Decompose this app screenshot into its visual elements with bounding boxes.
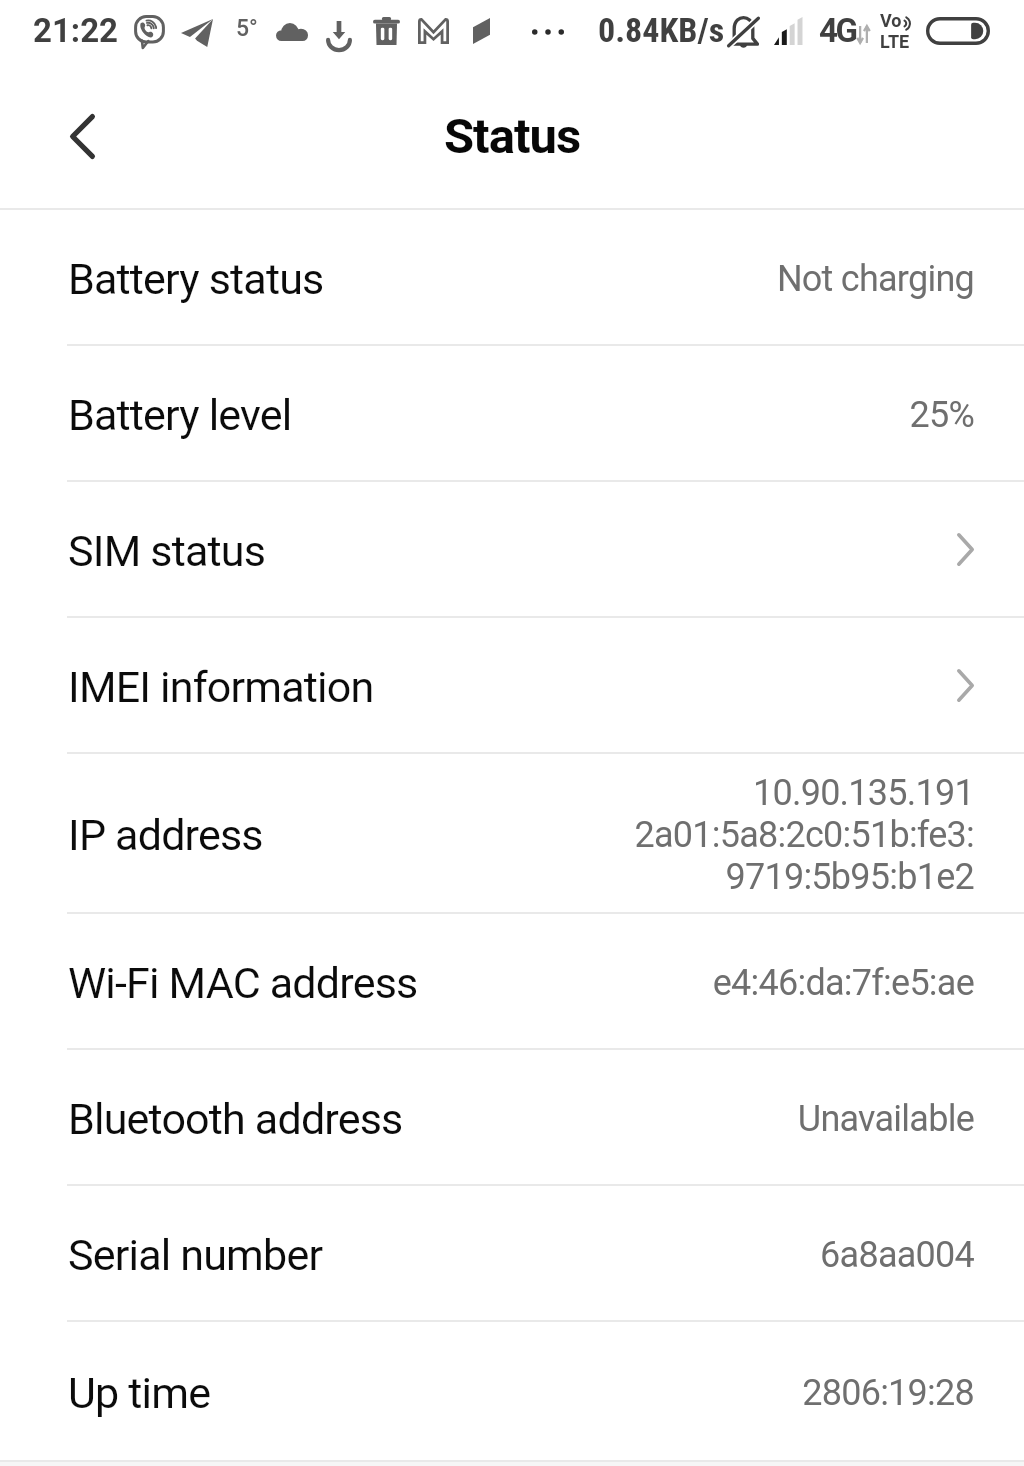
button[interactable]: Wi-Fi MAC address bbox=[0, 914, 1024, 1048]
staticText: IMEI information bbox=[68, 662, 374, 712]
button[interactable]: Back bbox=[0, 62, 150, 208]
staticText: LTE bbox=[880, 31, 910, 52]
button[interactable]: Battery level bbox=[0, 346, 1024, 480]
staticText: IP address bbox=[68, 810, 263, 860]
button[interactable]: IMEI information bbox=[0, 618, 1024, 752]
staticText: 5° bbox=[236, 15, 258, 42]
button[interactable]: Bluetooth address bbox=[0, 1050, 1024, 1184]
staticText: SIM status bbox=[68, 526, 266, 576]
staticText: Status bbox=[444, 108, 581, 165]
staticText: 25% bbox=[909, 394, 974, 436]
staticText: 21:22 bbox=[33, 11, 119, 50]
staticText: e4:46:da:7f:e5:ae bbox=[712, 962, 974, 1004]
staticText: 0.84KB/s bbox=[598, 10, 725, 50]
staticText: Battery status bbox=[68, 254, 324, 304]
staticText: 10.90.135.191 2a01:5a8:2c0:51b:fe3: 9719… bbox=[634, 772, 974, 898]
staticText: Unavailable bbox=[797, 1098, 974, 1140]
staticText: Battery level bbox=[68, 390, 292, 440]
staticText: Wi-Fi MAC address bbox=[68, 958, 418, 1008]
button[interactable]: SIM status bbox=[0, 482, 1024, 616]
staticText: Not charging bbox=[776, 258, 974, 300]
staticText: 4G bbox=[819, 11, 856, 50]
staticText: Up time bbox=[68, 1368, 211, 1418]
button[interactable]: Up time bbox=[0, 1322, 1024, 1460]
staticText: 6a8aa004 bbox=[820, 1234, 974, 1276]
button[interactable]: Battery status bbox=[0, 210, 1024, 344]
button[interactable]: Serial number bbox=[0, 1186, 1024, 1320]
staticText: Bluetooth address bbox=[68, 1094, 403, 1144]
staticText: Serial number bbox=[68, 1230, 323, 1280]
button[interactable]: IP address bbox=[0, 754, 1024, 912]
staticText: 2806:19:28 bbox=[802, 1372, 974, 1414]
staticText: Vo bbox=[880, 10, 902, 31]
